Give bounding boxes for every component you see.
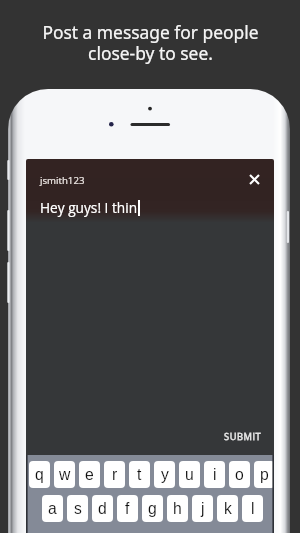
- button[interactable]: Close: [242, 167, 266, 191]
- button[interactable]: g: [142, 495, 163, 522]
- staticText: f: [125, 500, 130, 518]
- button[interactable]: SUBMIT: [217, 424, 269, 449]
- button[interactable]: r: [104, 461, 125, 488]
- staticText: h: [173, 500, 182, 518]
- button[interactable]: f: [117, 495, 138, 522]
- button[interactable]: k: [217, 495, 238, 522]
- staticText: u: [185, 466, 194, 484]
- button[interactable]: d: [92, 495, 113, 522]
- staticText: SUBMIT: [224, 430, 262, 443]
- staticText: s: [74, 500, 82, 518]
- button[interactable]: h: [167, 495, 188, 522]
- staticText: a: [48, 500, 57, 518]
- staticText: g: [148, 500, 157, 518]
- staticText: Post a message for people close-by to se…: [42, 20, 259, 65]
- staticText: w: [59, 466, 71, 484]
- staticText: d: [98, 500, 107, 518]
- staticText: jsmith123: [40, 174, 85, 187]
- button[interactable]: t: [129, 461, 150, 488]
- staticText: o: [235, 466, 244, 484]
- button[interactable]: w: [54, 461, 75, 488]
- staticText: t: [137, 466, 142, 484]
- staticText: y: [161, 466, 169, 484]
- button[interactable]: q: [29, 461, 50, 488]
- button[interactable]: i: [204, 461, 225, 488]
- button[interactable]: j: [192, 495, 213, 522]
- staticText: q: [35, 466, 44, 484]
- button[interactable]: o: [229, 461, 250, 488]
- button[interactable]: e: [79, 461, 100, 488]
- button[interactable]: u: [179, 461, 200, 488]
- button[interactable]: s: [67, 495, 88, 522]
- button[interactable]: a: [42, 495, 63, 522]
- staticText: i: [213, 466, 217, 484]
- staticText: p: [260, 466, 269, 484]
- staticText: r: [112, 466, 118, 484]
- staticText: j: [201, 500, 205, 518]
- button[interactable]: p: [254, 461, 274, 488]
- button[interactable]: y: [154, 461, 175, 488]
- staticText: k: [224, 500, 232, 518]
- staticText: Hey guys! I thin: [40, 198, 138, 217]
- staticText: l: [251, 500, 255, 518]
- button[interactable]: l: [242, 495, 263, 522]
- staticText: e: [85, 466, 94, 484]
